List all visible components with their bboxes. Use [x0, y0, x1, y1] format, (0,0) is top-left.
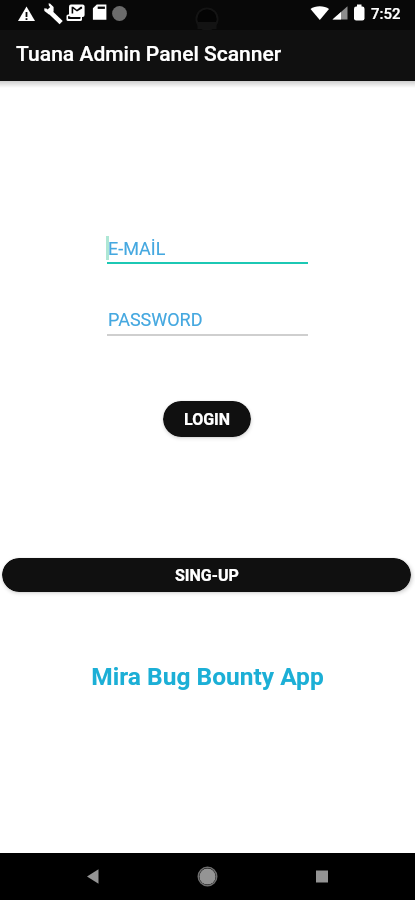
staticText: Tuana Admin Panel Scanner — [16, 42, 282, 67]
button[interactable]: PASSWORD — [107, 307, 308, 336]
staticText: PASSWORD — [108, 309, 203, 330]
staticText: LOGIN — [184, 410, 231, 429]
button[interactable]: LOGIN — [163, 401, 251, 437]
staticText: Mira Bug Bounty App — [0, 662, 415, 691]
staticText: E-MAİL — [108, 238, 166, 259]
button[interactable]: Home — [184, 853, 231, 900]
button[interactable]: Recent apps — [298, 853, 345, 900]
staticText: SING-UP — [175, 566, 239, 585]
button[interactable]: E-MAİL — [107, 236, 308, 264]
button[interactable]: SING-UP — [2, 558, 411, 592]
staticText: 7:52 — [371, 5, 401, 23]
button[interactable]: Back — [69, 853, 116, 900]
